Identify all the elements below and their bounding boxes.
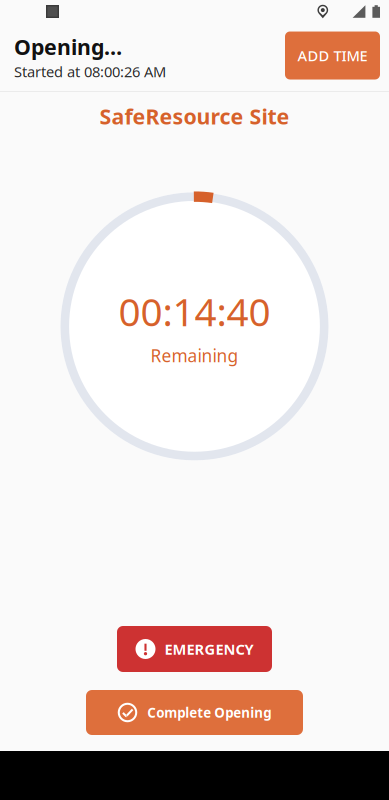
staticText: ADD TIME (297, 46, 367, 65)
staticText: 00:14:40 (118, 286, 270, 337)
staticText: EMERGENCY (164, 639, 253, 659)
staticText: Opening… (14, 33, 122, 61)
staticText: SafeResource Site (99, 102, 289, 130)
button[interactable]: ADD TIME (285, 33, 380, 81)
button[interactable]: Complete Opening (86, 690, 303, 735)
staticText: Remaining (150, 344, 238, 367)
staticText: Complete Opening (147, 704, 271, 721)
button[interactable]: EMERGENCY (117, 626, 272, 672)
staticText: Started at 08:00:26 AM (14, 62, 166, 81)
